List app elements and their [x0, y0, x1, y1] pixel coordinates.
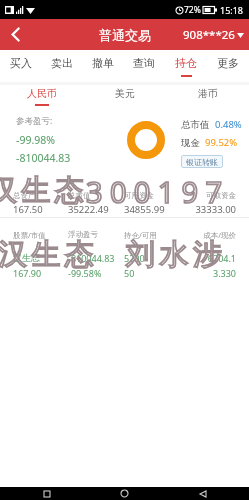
- button[interactable]: 撤单: [82, 50, 123, 82]
- staticText: 参考盈亏:: [16, 115, 53, 127]
- button[interactable]: 持仓: [165, 50, 207, 82]
- button[interactable]: 908***26: [183, 27, 244, 43]
- staticText: 持仓/可用: [124, 230, 180, 240]
- staticText: 普通交易: [99, 27, 151, 43]
- staticText: 167.90: [13, 267, 68, 279]
- staticText: 港币: [198, 87, 218, 100]
- button[interactable]: 美元: [83, 85, 166, 107]
- staticText: 167.50: [13, 203, 68, 216]
- staticText: 浮动盈亏: [68, 230, 124, 239]
- staticText: 股票/市值: [13, 230, 68, 240]
- staticText: 3.330: [180, 267, 236, 279]
- staticText: 可用资金: [124, 191, 180, 200]
- staticText: 908***26: [183, 27, 235, 43]
- staticText: 35222.49: [68, 203, 124, 216]
- staticText: 持仓: [175, 56, 197, 70]
- staticText: -99.98%: [16, 133, 55, 147]
- staticText: 总市值: [68, 191, 124, 200]
- button[interactable]: Back: [0, 19, 30, 50]
- staticText: 300197: [86, 172, 230, 211]
- staticText: -810044.83: [68, 252, 124, 264]
- staticText: 查询: [133, 56, 155, 70]
- button[interactable]: 银证转账: [181, 155, 223, 168]
- staticText: 人民币: [27, 87, 57, 100]
- staticText: -99.58%: [68, 267, 124, 279]
- staticText: 卖出: [51, 56, 73, 70]
- button[interactable]: 人民币: [0, 85, 83, 107]
- staticText: 现金: [181, 137, 200, 149]
- button[interactable]: 更多: [207, 50, 249, 82]
- staticText: 可取资金: [180, 191, 236, 200]
- staticText: 银证转账: [186, 157, 218, 167]
- button[interactable]: 查询: [123, 50, 165, 82]
- button[interactable]: 汉生态: [0, 252, 249, 279]
- button[interactable]: Home: [118, 487, 131, 500]
- staticText: 买入: [10, 56, 32, 70]
- staticText: 34855.99: [124, 203, 180, 216]
- staticText: 6204.1: [180, 252, 236, 264]
- staticText: 33333.00: [180, 203, 236, 216]
- staticText: -810044.83: [16, 151, 71, 165]
- staticText: 更多: [217, 56, 239, 70]
- staticText: 5200: [124, 252, 180, 264]
- staticText: 72%: [184, 4, 201, 16]
- staticText: 成本/现价: [180, 230, 236, 240]
- button[interactable]: Back: [196, 487, 209, 500]
- button[interactable]: 港币: [166, 85, 249, 107]
- staticText: 汉生态: [0, 172, 89, 209]
- staticText: 99.52%: [205, 136, 238, 149]
- staticText: 15:18: [220, 4, 244, 16]
- staticText: 汉生态: [13, 252, 68, 263]
- staticText: 总资产: [13, 191, 68, 200]
- staticText: 50: [124, 267, 180, 279]
- staticText: 撤单: [92, 56, 114, 70]
- staticText: 0.48%: [215, 118, 242, 131]
- button[interactable]: 卖出: [41, 50, 82, 82]
- staticText: 刘水涉: [126, 236, 227, 273]
- button[interactable]: Recent apps: [40, 487, 53, 500]
- staticText: 汉生态: [0, 236, 99, 273]
- staticText: 美元: [115, 87, 135, 100]
- staticText: 总市值: [181, 119, 210, 131]
- button[interactable]: 买入: [0, 50, 41, 82]
